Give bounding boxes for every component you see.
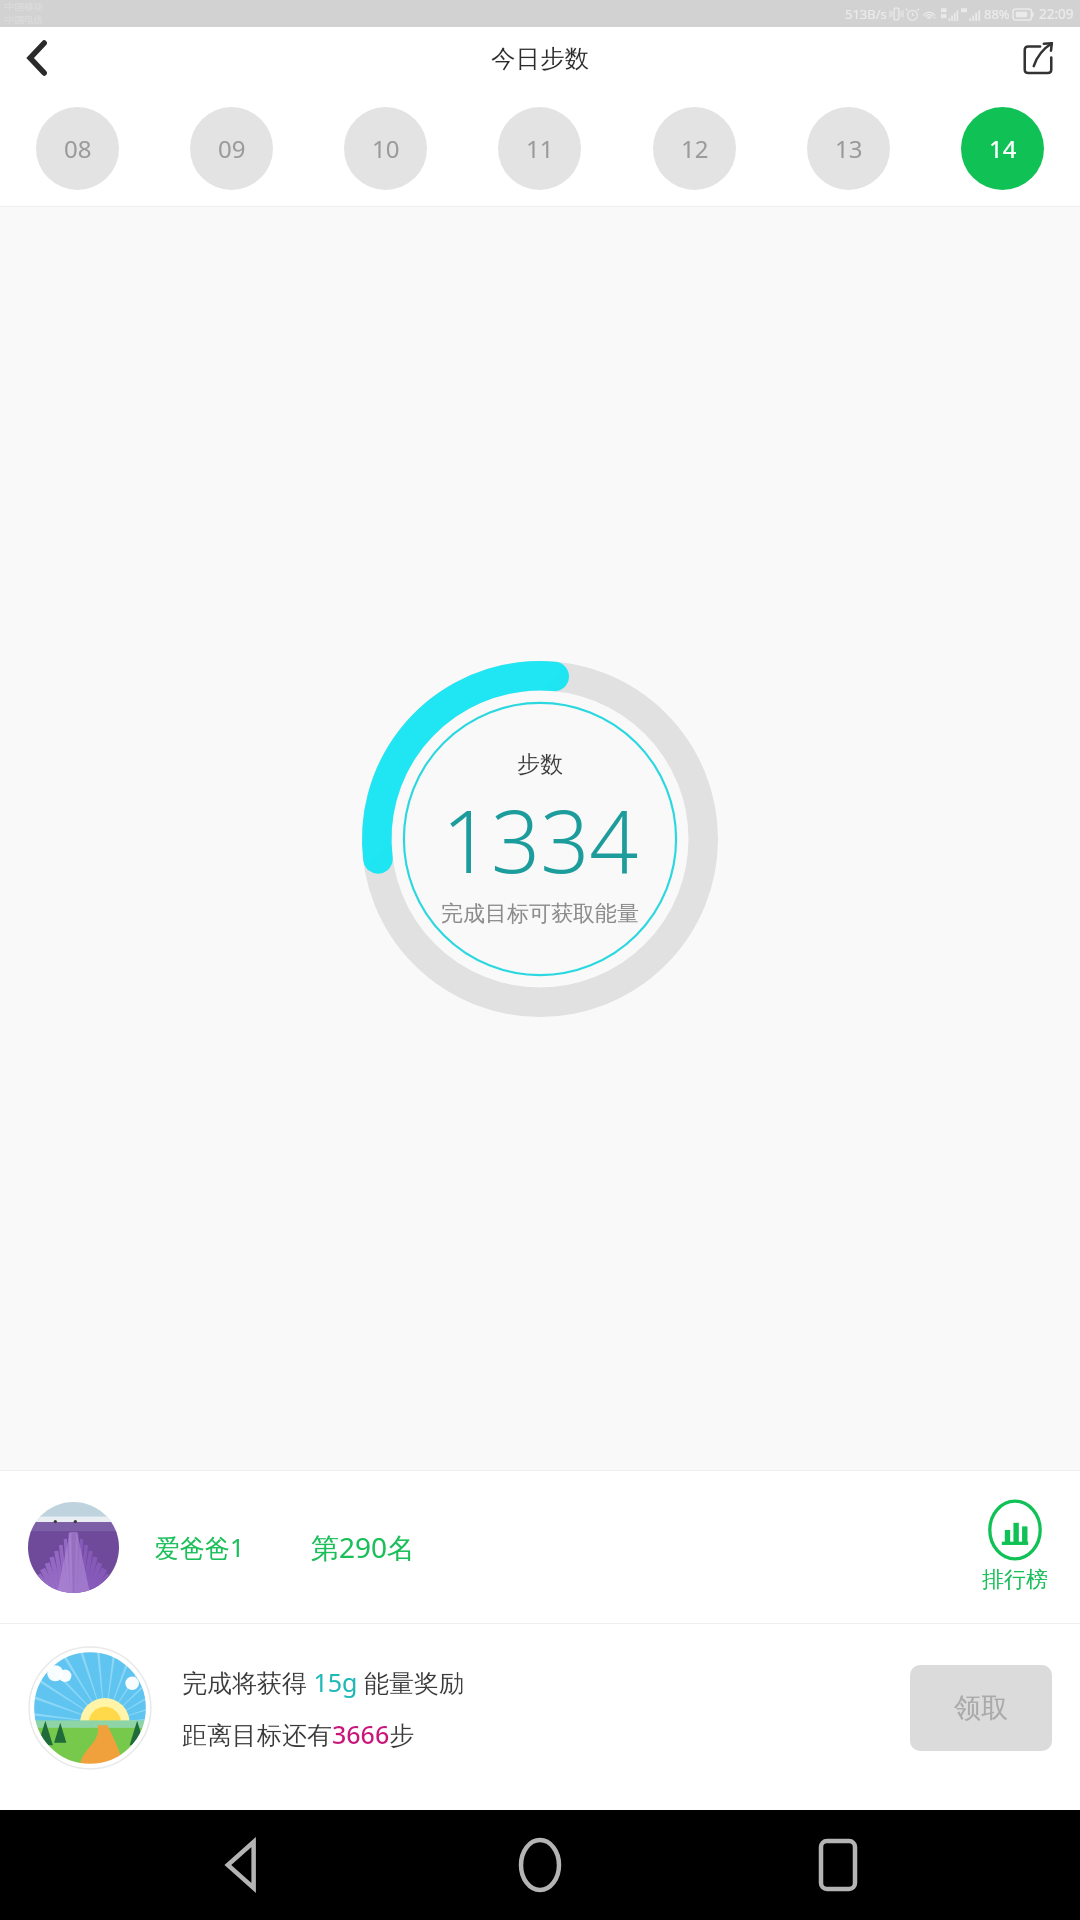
button[interactable]: 08 — [36, 107, 119, 190]
staticText: 今日步数 — [491, 43, 589, 74]
button[interactable]: 14 — [961, 107, 1044, 190]
button[interactable]: Back — [10, 30, 66, 86]
staticText: 1334 — [442, 781, 639, 898]
staticText: 完成目标可获取能量 — [441, 900, 639, 928]
staticText: 完成将获得 15g 能量奖励 — [182, 1665, 464, 1699]
button[interactable]: 领取 — [910, 1665, 1052, 1751]
button[interactable]: 13 — [807, 107, 890, 190]
staticText: 88% — [984, 5, 1010, 23]
button[interactable]: Recent apps — [783, 1810, 893, 1920]
staticText: 距离目标还有3666步 — [182, 1717, 415, 1751]
staticText: 09 — [218, 132, 246, 165]
staticText: 12 — [681, 132, 709, 165]
staticText: 08 — [64, 132, 92, 165]
staticText: 11 — [526, 132, 554, 165]
staticText: 排行榜 — [982, 1566, 1048, 1594]
staticText: 爱爸爸1 — [155, 1530, 245, 1564]
button[interactable]: 10 — [344, 107, 427, 190]
staticText: 中国移动 — [5, 1, 43, 13]
staticText: 领取 — [954, 1691, 1008, 1725]
staticText: 13 — [835, 132, 863, 165]
button[interactable]: 排行榜 — [978, 1496, 1052, 1598]
staticText: 14 — [989, 132, 1017, 165]
staticText: 第290名 — [311, 1528, 416, 1566]
staticText: 中国电信 — [5, 14, 43, 26]
button[interactable]: Share — [1010, 30, 1066, 86]
staticText: 步数 — [517, 750, 563, 779]
button[interactable]: Back — [188, 1810, 298, 1920]
button[interactable]: 爱爸爸1 — [0, 1471, 1080, 1623]
button[interactable]: 11 — [498, 107, 581, 190]
staticText: 513B/s — [845, 5, 887, 23]
button[interactable]: 09 — [190, 107, 273, 190]
button[interactable]: 12 — [653, 107, 736, 190]
button[interactable]: Home — [485, 1810, 595, 1920]
staticText: 22:09 — [1039, 5, 1074, 23]
staticText: 10 — [372, 132, 400, 165]
